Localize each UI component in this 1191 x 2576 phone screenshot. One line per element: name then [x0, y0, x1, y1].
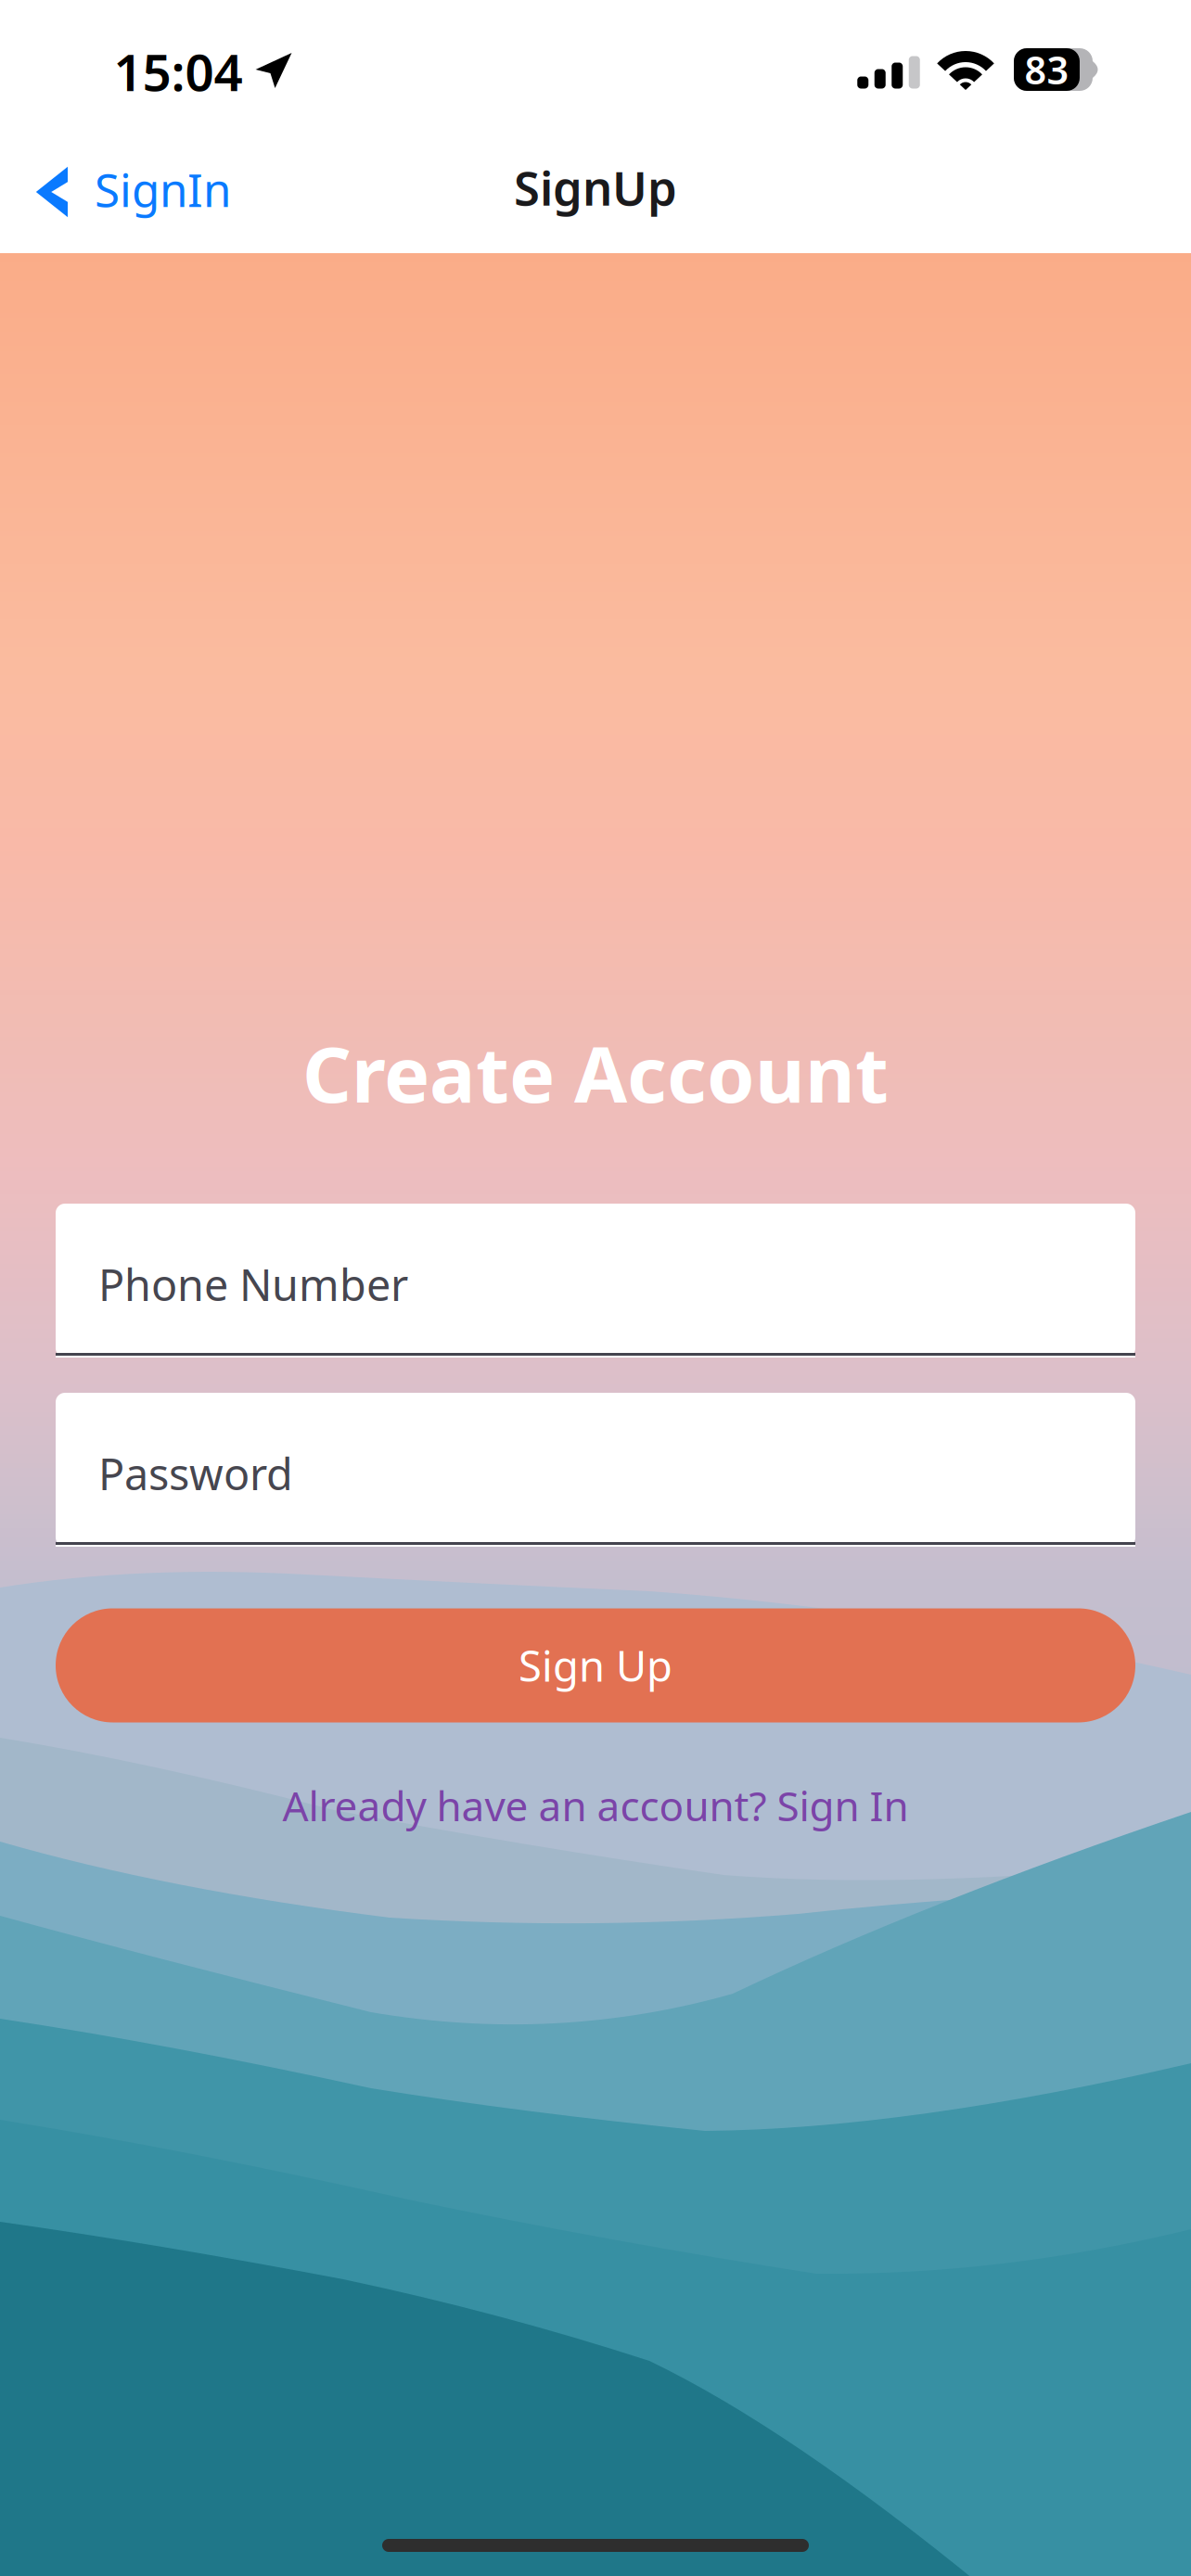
staticText: Create Account [302, 1022, 889, 1124]
button[interactable]: Sign Up [56, 1608, 1135, 1722]
staticText: SignIn [95, 159, 231, 219]
staticText: 83 [1025, 44, 1069, 95]
staticText: Sign Up [519, 1637, 672, 1693]
staticText: Password [98, 1445, 293, 1502]
staticText: Already have an account? Sign In [282, 1778, 909, 1833]
button[interactable]: SignIn [0, 139, 278, 239]
staticText: SignUp [514, 156, 677, 219]
button[interactable]: Already have an account? Sign In [243, 1773, 948, 1838]
staticText: 15:04 [114, 38, 243, 105]
staticText: Phone Number [98, 1256, 408, 1313]
